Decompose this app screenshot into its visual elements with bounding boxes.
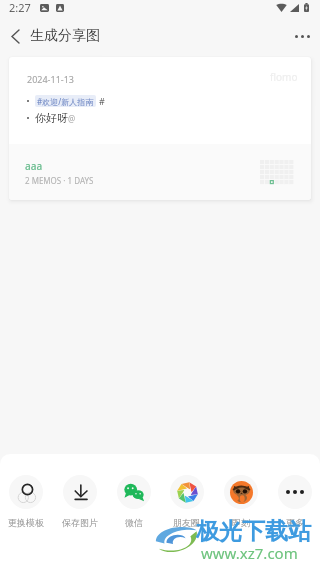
staticText: 更换模板 (8, 517, 44, 528)
button[interactable]: 微信 (111, 454, 156, 528)
staticText: 2 MEMOS · 1 DAYS (25, 175, 94, 186)
staticText: 极光下载站 (196, 517, 311, 546)
staticText: 更多 (286, 517, 304, 528)
button[interactable]: More options (284, 22, 320, 50)
button[interactable]: 更换模板 (3, 454, 48, 528)
staticText: 2:27 (9, 0, 31, 15)
button[interactable]: Back (0, 22, 30, 50)
staticText: 生成分享图 (30, 27, 100, 45)
staticText: #欢迎/新人指南 (37, 96, 94, 107)
staticText: aaa (25, 159, 43, 173)
staticText: 微信 (125, 517, 143, 528)
button[interactable]: 保存图片 (57, 454, 102, 528)
staticText: 你好呀 (35, 111, 68, 125)
staticText: flomo (270, 70, 298, 84)
staticText: # (99, 95, 105, 107)
button[interactable]: 更多 (272, 454, 317, 528)
staticText: 2024-11-13 (27, 73, 74, 85)
staticText: www.xz7.com (201, 543, 298, 563)
button[interactable]: 即刻 (218, 454, 263, 528)
staticText: 朋友圈 (173, 517, 200, 528)
staticText: 即刻 (232, 517, 250, 528)
staticText: 保存图片 (62, 517, 98, 528)
button[interactable]: 朋友圈 (164, 454, 209, 528)
staticText: @ (68, 113, 76, 124)
